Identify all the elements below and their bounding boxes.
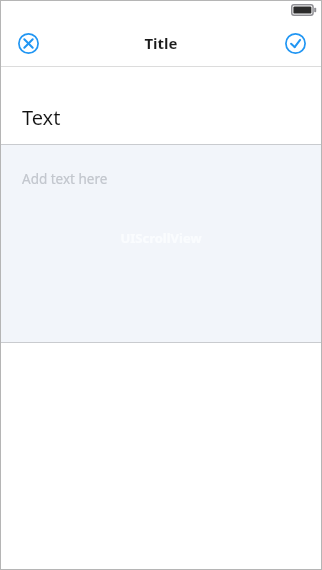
button[interactable]: Close <box>6 21 50 65</box>
staticText: Title <box>144 33 178 53</box>
button[interactable]: Done <box>273 21 317 65</box>
button[interactable]: Add text here <box>0 145 322 342</box>
staticText: Text <box>22 104 61 131</box>
staticText: UIScrollView <box>120 229 202 247</box>
staticText: Add text here <box>22 170 108 188</box>
